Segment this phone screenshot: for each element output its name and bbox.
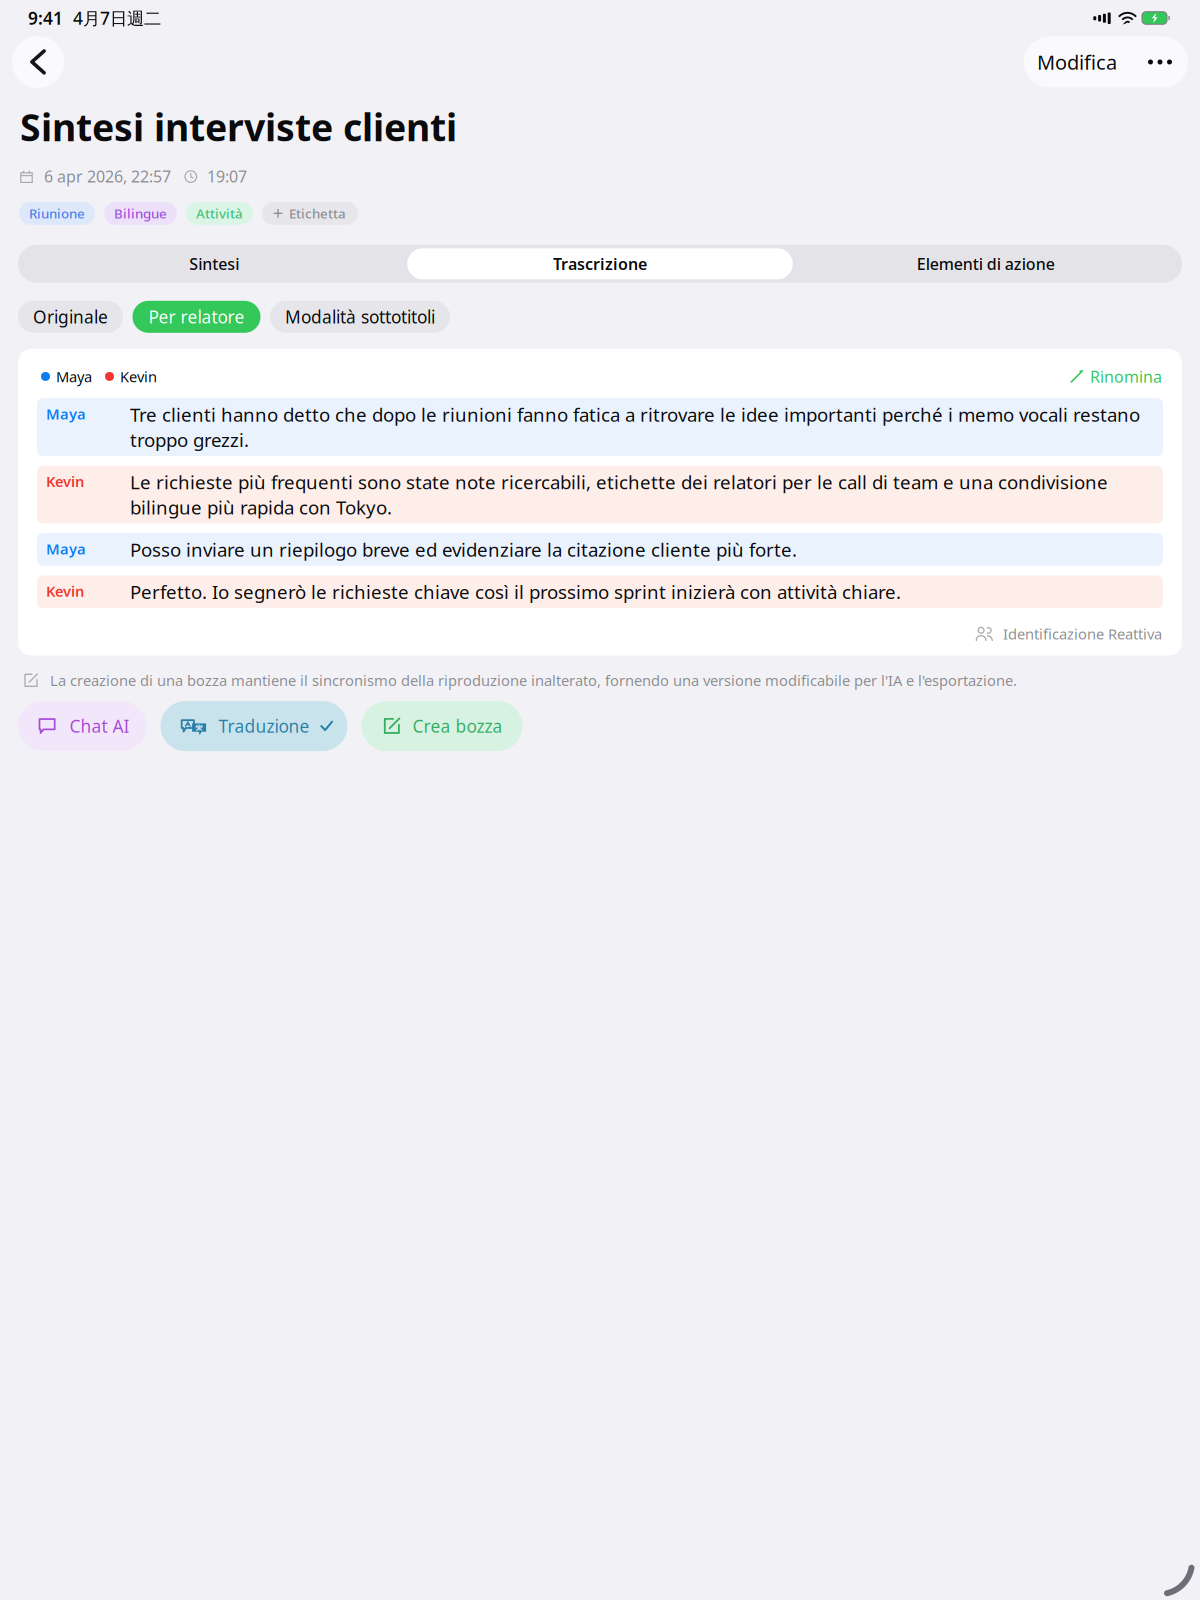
staticText: Le richieste più frequenti sono state no… [130,470,1108,520]
staticText: Maya [56,367,92,386]
staticText: Modalità sottotitoli [285,305,435,328]
button[interactable]: Etichetta [262,202,358,225]
staticText: Originale [33,305,108,328]
button[interactable]: Attività [186,202,253,225]
staticText: Riunione [29,204,85,222]
button[interactable]: Per relatore [132,301,260,333]
staticText: Rinomina [1090,366,1162,387]
button[interactable]: Modifica [1024,36,1188,87]
button[interactable]: Traduzione [160,701,347,751]
staticText: Kevin [46,581,84,601]
staticText: Elementi di azione [917,253,1055,274]
button[interactable]: Riunione [19,202,95,225]
staticText: Trascrizione [553,253,647,274]
button[interactable]: Bilingue [104,202,177,225]
button[interactable]: Trascrizione [407,248,793,279]
staticText: Kevin [46,472,84,491]
button[interactable]: Indietro [12,36,64,88]
staticText: Sintesi [189,253,239,274]
staticText: 6 apr 2026, 22:57 [44,166,171,187]
staticText: 19:07 [207,166,247,187]
staticText: Posso inviare un riepilogo breve ed evid… [130,537,797,562]
staticText: Per relatore [148,305,244,328]
staticText: Attività [196,204,243,222]
button[interactable]: Rinomina [1070,366,1162,387]
staticText: Maya [46,404,86,424]
button[interactable]: Sintesi [21,248,407,279]
staticText: 9:41 [28,6,63,29]
button[interactable]: Crea bozza [361,701,522,751]
staticText: Sintesi interviste clienti [20,102,457,152]
button[interactable]: Elementi di azione [793,248,1178,279]
staticText: Perfetto. Io segnerò le richieste chiave… [130,579,901,604]
staticText: Bilingue [114,204,167,222]
button[interactable]: Chat AI [18,701,146,751]
staticText: Modifica [1037,49,1117,75]
button[interactable]: Originale [18,301,123,333]
staticText: Crea bozza [412,715,502,738]
staticText: Tre clienti hanno detto che dopo le riun… [130,402,1140,452]
staticText: Kevin [120,367,157,386]
staticText: 4月7日週二 [63,6,161,29]
staticText: La creazione di una bozza mantiene il si… [50,671,1017,690]
staticText: Etichetta [289,204,346,222]
staticText: Chat AI [69,715,129,738]
staticText: Traduzione [218,715,309,738]
staticText: Identificazione Reattiva [1003,624,1162,644]
staticText: Maya [46,539,86,558]
button[interactable]: Modalità sottotitoli [270,301,450,333]
